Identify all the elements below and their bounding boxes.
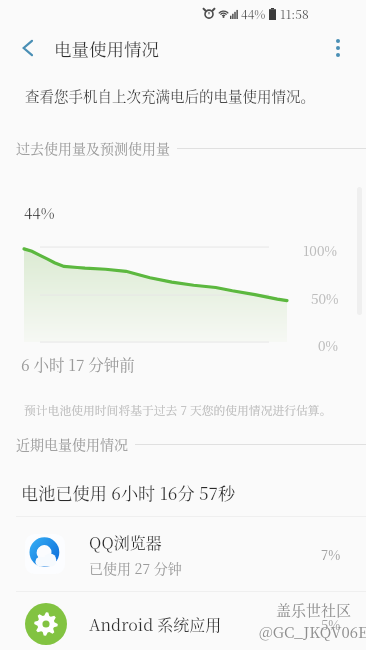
staticText: 44% [24, 202, 55, 224]
staticText: 查看您手机自上次充满电后的电量使用情况。 [25, 85, 315, 106]
button[interactable]: QQ浏览器 [0, 517, 366, 591]
staticText: 盖乐世社区 [276, 599, 352, 621]
staticText: 已使用 27 分钟 [89, 558, 182, 578]
staticText: 5% [321, 615, 341, 634]
staticText: @GC_JKQV06E [259, 621, 366, 643]
staticText: QQ浏览器 [89, 531, 162, 554]
staticText: 6 小时 17 分钟前 [21, 353, 135, 375]
button[interactable]: Back [8, 27, 48, 69]
staticText: 7% [321, 545, 341, 564]
staticText: 50% [311, 288, 339, 307]
staticText: 过去使用量及预测使用量 [16, 138, 170, 158]
staticText: 44% [241, 5, 266, 22]
staticText: 11:58 [280, 5, 309, 22]
button[interactable]: More options [318, 27, 358, 69]
staticText: 近期电量使用情况 [16, 434, 128, 454]
staticText: 0% [318, 335, 338, 354]
staticText: 电池已使用 6小时 16分 57秒 [21, 480, 236, 505]
staticText: 预计电池使用时间将基于过去 7 天您的使用情况进行估算。 [24, 401, 332, 418]
staticText: 100% [303, 240, 337, 259]
button[interactable]: Android 系统应用 [0, 592, 366, 650]
staticText: Android 系统应用 [89, 613, 222, 636]
staticText: 电量使用情况 [54, 36, 159, 61]
